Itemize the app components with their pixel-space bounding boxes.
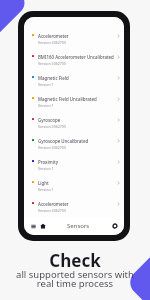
staticText: Gyroscope Uncalibrated: [38, 138, 89, 144]
button[interactable]: BMI160 Accelerometer Uncalibrated: [24, 49, 124, 70]
staticText: Version 1: [38, 82, 54, 87]
staticText: Magnetic Field: [38, 75, 69, 81]
staticText: Accelerometer: [38, 201, 69, 207]
staticText: Accelerometer: [38, 33, 69, 39]
staticText: Version 3062705: [38, 61, 66, 66]
button[interactable]: Settings: [110, 221, 120, 231]
staticText: Check: [0, 249, 150, 272]
button[interactable]: Accelerometer: [24, 28, 124, 49]
button[interactable]: Gyroscope Uncalibrated: [24, 133, 124, 154]
staticText: Proximity: [38, 159, 58, 165]
staticText: Version 3062705: [38, 40, 66, 45]
button[interactable]: Gyroscope: [24, 112, 124, 133]
staticText: Version 1: [38, 166, 54, 171]
button[interactable]: Light: [24, 175, 124, 196]
staticText: BMI160 Accelerometer Uncalibrated: [38, 54, 114, 60]
button[interactable]: Accelerometer: [24, 196, 124, 217]
button[interactable]: Magnetic Field Uncalibrated: [24, 91, 124, 112]
staticText: Light: [38, 180, 49, 186]
button[interactable]: Magnetic Field: [24, 70, 124, 91]
staticText: Magnetic Field Uncalibrated: [38, 96, 97, 102]
button[interactable]: Menu: [28, 221, 38, 231]
staticText: Version 3062705: [38, 145, 66, 150]
staticText: Version 3062705: [38, 208, 66, 213]
button[interactable]: Home: [38, 221, 48, 231]
button[interactable]: Proximity: [24, 154, 124, 175]
staticText: Sensors: [67, 222, 90, 230]
staticText: Version 1: [38, 187, 54, 192]
staticText: Gyroscope: [38, 117, 61, 123]
staticText: Version 1: [38, 103, 54, 108]
staticText: all supported sensors with real time pro…: [0, 268, 150, 290]
staticText: Version 3062705: [38, 124, 66, 129]
